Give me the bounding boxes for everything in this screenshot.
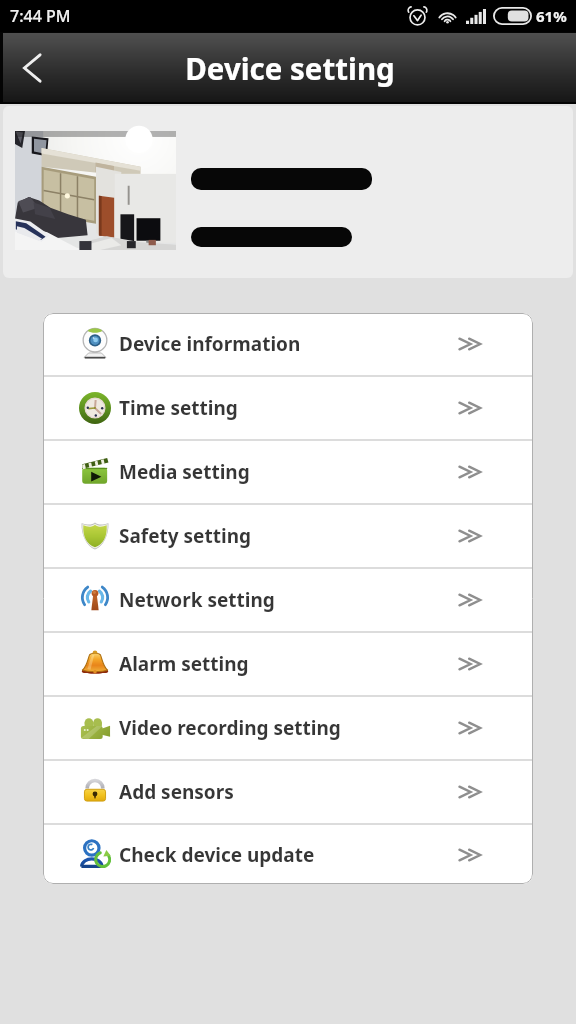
- staticText: Alarm setting: [119, 651, 249, 677]
- button[interactable]: Back: [4, 40, 60, 96]
- staticText: Device information: [119, 331, 301, 357]
- button[interactable]: Network setting: [43, 569, 533, 631]
- staticText: 61%: [536, 6, 567, 26]
- button[interactable]: Time setting: [43, 377, 533, 439]
- button[interactable]: Safety setting: [43, 505, 533, 567]
- staticText: Add sensors: [119, 779, 234, 805]
- staticText: Time setting: [119, 395, 238, 421]
- button[interactable]: Add sensors: [43, 761, 533, 823]
- staticText: Check device update: [119, 842, 315, 868]
- button[interactable]: Video recording setting: [43, 697, 533, 759]
- staticText: Network setting: [119, 587, 275, 613]
- button[interactable]: Media setting: [43, 441, 533, 503]
- staticText: Safety setting: [119, 523, 251, 549]
- button[interactable]: [3, 106, 573, 278]
- staticText: Device setting: [185, 48, 395, 88]
- button[interactable]: Check device update: [43, 825, 533, 884]
- staticText: Video recording setting: [119, 715, 341, 741]
- staticText: Media setting: [119, 459, 250, 485]
- button[interactable]: Alarm setting: [43, 633, 533, 695]
- button[interactable]: Device information: [43, 313, 533, 375]
- staticText: 7:44 PM: [10, 5, 71, 27]
